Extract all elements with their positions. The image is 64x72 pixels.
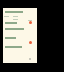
button[interactable]: Status [29, 41, 32, 44]
button[interactable]: Status [29, 21, 32, 24]
